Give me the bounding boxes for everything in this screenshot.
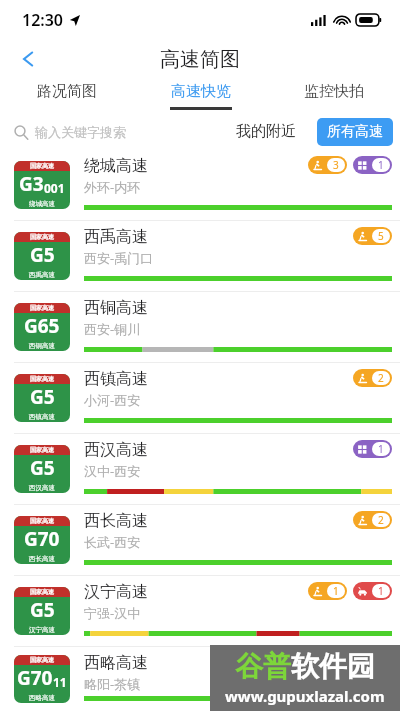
staticText: 11 — [53, 674, 67, 690]
staticText: 路况简图 — [37, 82, 97, 101]
staticText: G5 — [30, 455, 55, 481]
button[interactable]: 国家高速 — [0, 647, 400, 711]
staticText: 西长高速 — [84, 511, 148, 531]
button[interactable]: 3 — [308, 156, 347, 174]
staticText: 西汉高速 — [29, 484, 55, 492]
staticText: 西长高速 — [29, 555, 55, 563]
staticText: 西铜高速 — [84, 298, 148, 318]
staticText: 汉中-西安 — [84, 462, 141, 480]
staticText: 西略高速 — [29, 694, 55, 702]
button[interactable]: 1 — [308, 582, 347, 600]
staticText: 1 — [378, 158, 384, 172]
staticText: 2 — [378, 513, 384, 527]
button[interactable]: 所有高速 — [317, 118, 393, 146]
staticText: G3 — [19, 171, 44, 197]
staticText: 小河-西安 — [84, 391, 141, 409]
button[interactable]: 我的附近 — [236, 122, 296, 141]
staticText: 绕城高速 — [29, 200, 55, 208]
button[interactable]: Back — [12, 41, 48, 77]
staticText: 西汉高速 — [84, 440, 148, 460]
staticText: 国家高速 — [30, 304, 54, 312]
staticText: 略阳-茶镇 — [84, 675, 141, 693]
staticText: 2 — [378, 371, 384, 385]
staticText: G70 — [24, 526, 60, 552]
button[interactable]: 1 — [353, 440, 392, 458]
button[interactable]: 路况简图 — [0, 78, 134, 113]
button[interactable]: 1 — [353, 156, 392, 174]
button[interactable]: 2 — [353, 511, 392, 529]
staticText: 宁强-汉中 — [84, 604, 141, 622]
staticText: 监控快拍 — [304, 82, 364, 101]
staticText: 谷普 — [235, 649, 291, 684]
staticText: 汉宁高速 — [84, 582, 148, 602]
staticText: 输入关键字搜索 — [35, 124, 126, 140]
staticText: 国家高速 — [30, 233, 54, 241]
staticText: 高速快览 — [171, 82, 231, 101]
staticText: 001 — [44, 180, 65, 196]
staticText: 1 — [333, 584, 339, 598]
staticText: 1 — [378, 584, 384, 598]
staticText: 长武-西安 — [84, 533, 141, 551]
staticText: 汉宁高速 — [29, 626, 55, 634]
staticText: 1 — [378, 442, 384, 456]
button[interactable]: 1 — [353, 582, 392, 600]
button[interactable]: 输入关键字搜索 — [14, 124, 126, 140]
staticText: 5 — [378, 229, 384, 243]
staticText: G70 — [17, 665, 53, 691]
staticText: 国家高速 — [30, 446, 54, 454]
button[interactable]: 国家高速 — [0, 150, 400, 220]
staticText: 国家高速 — [30, 656, 54, 664]
staticText: 西镇高速 — [29, 413, 55, 421]
button[interactable]: 监控快拍 — [267, 78, 400, 113]
staticText: 高速简图 — [160, 47, 240, 72]
staticText: G5 — [30, 384, 55, 410]
staticText: G65 — [24, 313, 60, 339]
button[interactable]: 国家高速 — [0, 505, 400, 575]
staticText: 外环-内环 — [84, 178, 141, 196]
staticText: 西禹高速 — [84, 227, 148, 247]
staticText: G5 — [30, 242, 55, 268]
button[interactable]: 国家高速 — [0, 292, 400, 362]
staticText: G5 — [30, 597, 55, 623]
staticText: 国家高速 — [30, 588, 54, 596]
staticText: 西铜高速 — [29, 342, 55, 350]
button[interactable]: 国家高速 — [0, 221, 400, 291]
button[interactable]: 2 — [353, 369, 392, 387]
staticText: 我的附近 — [236, 122, 296, 141]
button[interactable]: 国家高速 — [0, 434, 400, 504]
button[interactable]: 高速快览 — [134, 78, 267, 113]
staticText: 绕城高速 — [84, 156, 148, 176]
staticText: 国家高速 — [30, 375, 54, 383]
staticText: 国家高速 — [30, 162, 54, 170]
staticText: 软件园 — [291, 649, 375, 684]
staticText: 西禹高速 — [29, 271, 55, 279]
staticText: www.gupuxlazal.com — [225, 686, 385, 706]
button[interactable]: 国家高速 — [0, 576, 400, 646]
staticText: 3 — [333, 158, 339, 172]
staticText: 西安-铜川 — [84, 320, 141, 338]
staticText: 西略高速 — [84, 653, 148, 673]
staticText: 西安-禹门口 — [84, 249, 154, 267]
staticText: 所有高速 — [327, 123, 383, 141]
button[interactable]: 5 — [353, 227, 392, 245]
staticText: 12:30 — [22, 9, 64, 31]
staticText: 国家高速 — [30, 517, 54, 525]
button[interactable]: 国家高速 — [0, 363, 400, 433]
staticText: 西镇高速 — [84, 369, 148, 389]
